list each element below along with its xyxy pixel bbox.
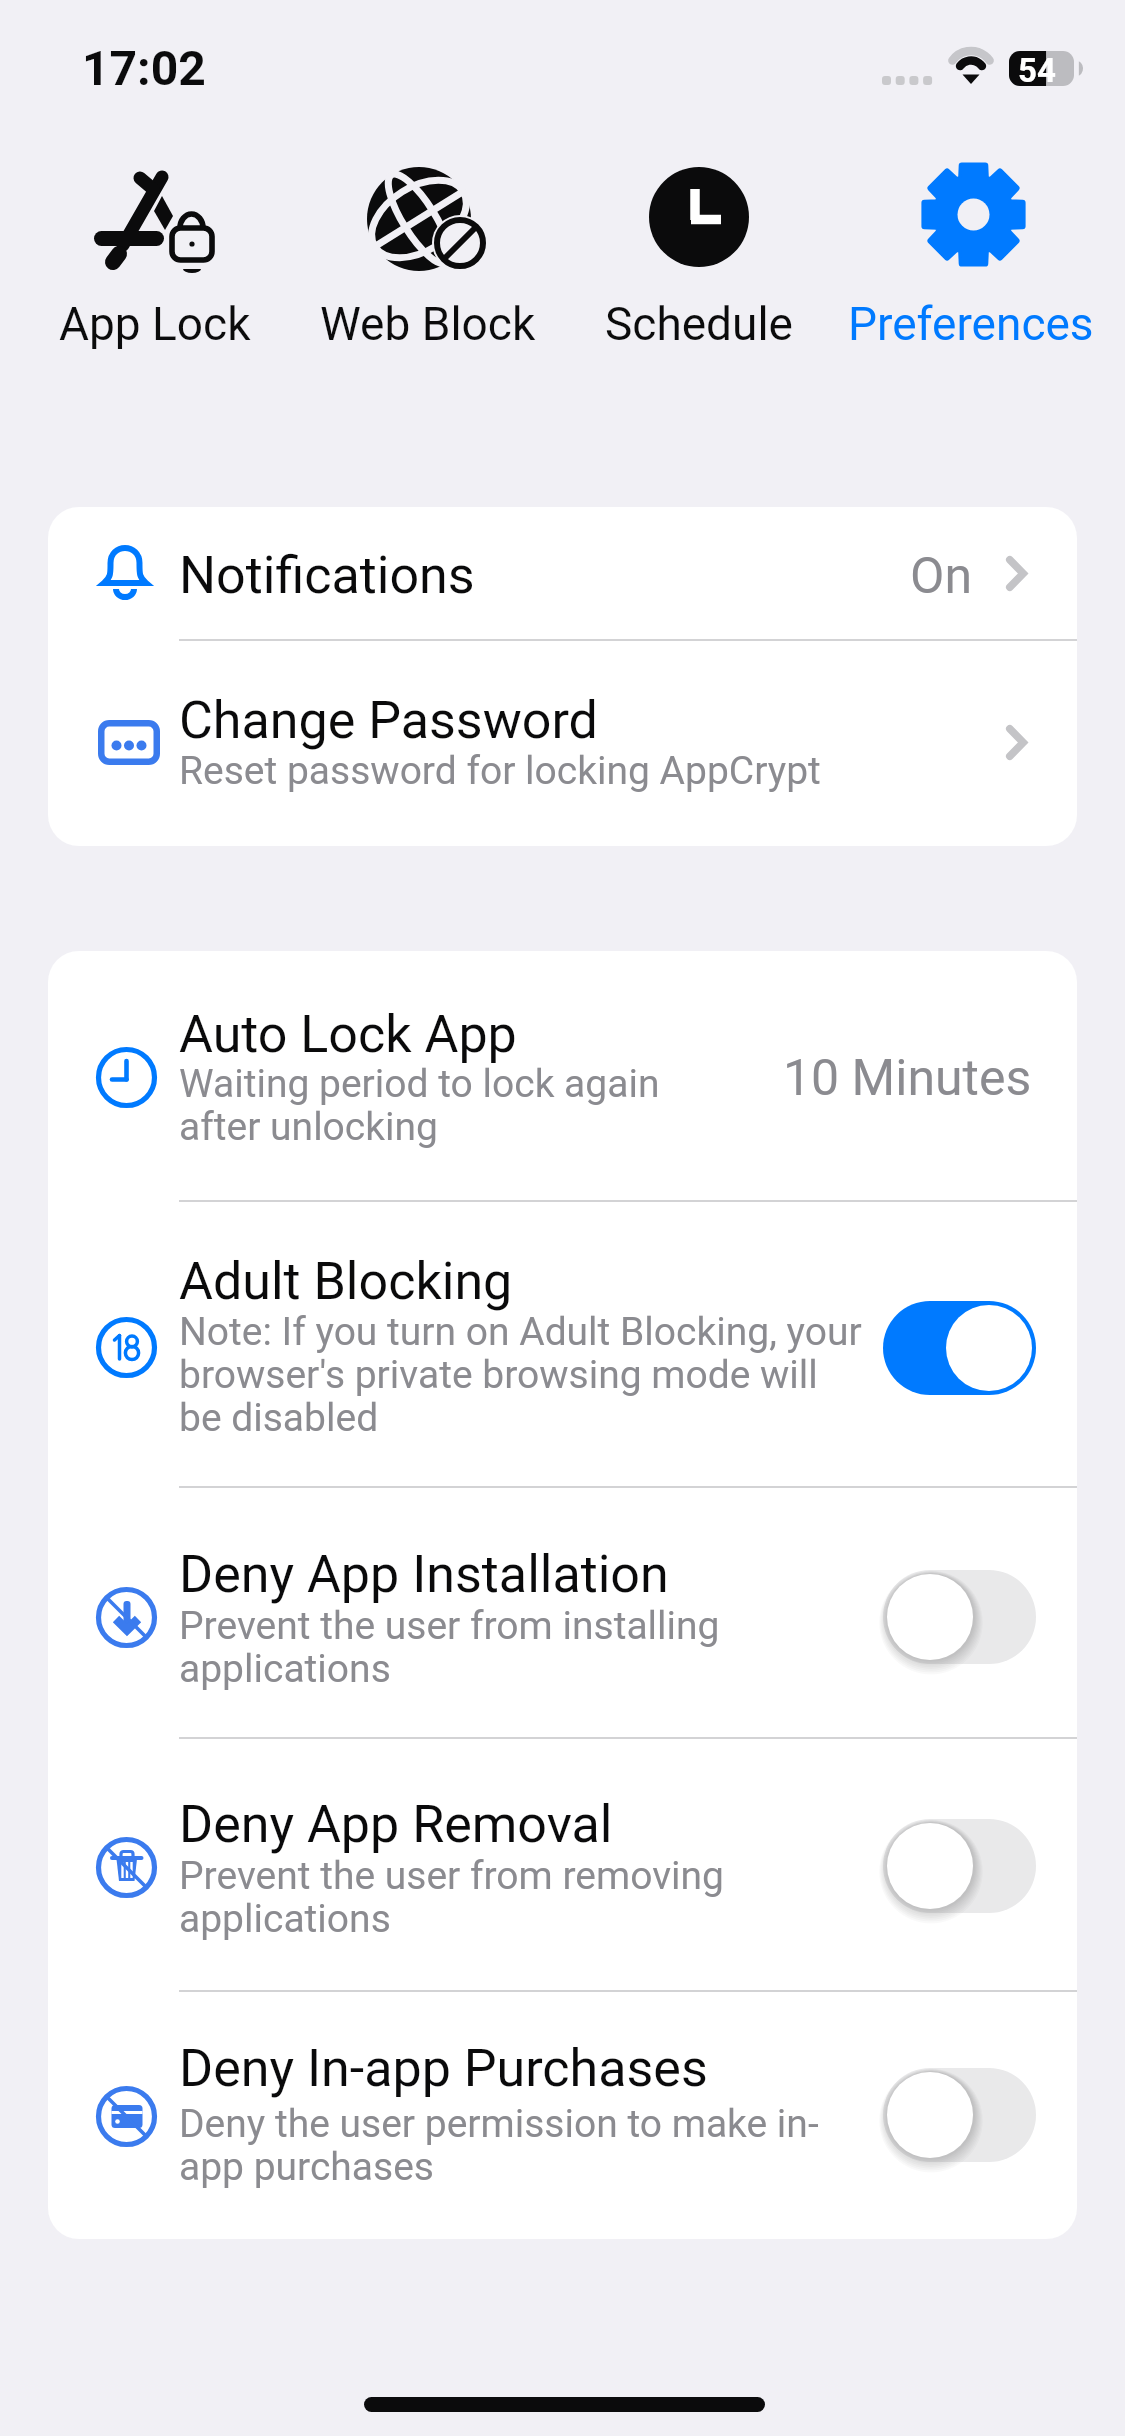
button[interactable]: Deny App Installation [48, 1488, 1077, 1737]
staticText: Prevent the user from removing applicati… [179, 1853, 749, 1942]
staticText: Deny In-app Purchases [179, 2038, 708, 2099]
staticText: Notifications [179, 545, 475, 606]
button[interactable]: Switch off [883, 1819, 1036, 1913]
staticText: 17:02 [82, 40, 206, 96]
button[interactable]: Deny App Removal [48, 1739, 1077, 1990]
button[interactable]: Adult Blocking [48, 1202, 1077, 1486]
button[interactable]: App Lock [15, 150, 295, 355]
staticText: Waiting period to lock again after unloc… [179, 1061, 679, 1150]
staticText: Adult Blocking [179, 1251, 513, 1312]
staticText: Deny App Installation [179, 1544, 669, 1605]
button[interactable]: Change Password [48, 641, 1077, 846]
staticText: App Lock [59, 297, 251, 351]
button[interactable]: Web Block [288, 150, 568, 355]
staticText: Note: If you turn on Adult Blocking, you… [179, 1309, 863, 1441]
staticText: Auto Lock App [179, 1004, 517, 1065]
staticText: Web Block [320, 297, 536, 351]
staticText: 10 Minutes [783, 1049, 1032, 1108]
button[interactable]: Preferences [831, 150, 1111, 355]
staticText: Preferences [848, 297, 1094, 351]
button[interactable]: Deny In-app Purchases [48, 1992, 1077, 2239]
staticText: Schedule [605, 297, 793, 351]
button[interactable]: Switch off [883, 2068, 1036, 2162]
button[interactable]: Schedule [559, 150, 839, 355]
staticText: On [910, 547, 973, 606]
staticText: Reset password for locking AppCrypt [179, 748, 821, 794]
button[interactable]: Switch off [883, 1570, 1036, 1664]
staticText: Deny App Removal [179, 1794, 613, 1855]
staticText: Change Password [179, 690, 598, 751]
button[interactable]: Notifications [48, 507, 1077, 639]
staticText: Prevent the user from installing applica… [179, 1603, 739, 1692]
staticText: Deny the user permission to make in-app … [179, 2101, 839, 2190]
button[interactable]: Switch on [883, 1301, 1036, 1395]
staticText: 54 [1018, 51, 1056, 90]
button[interactable]: Auto Lock App [48, 951, 1077, 1200]
